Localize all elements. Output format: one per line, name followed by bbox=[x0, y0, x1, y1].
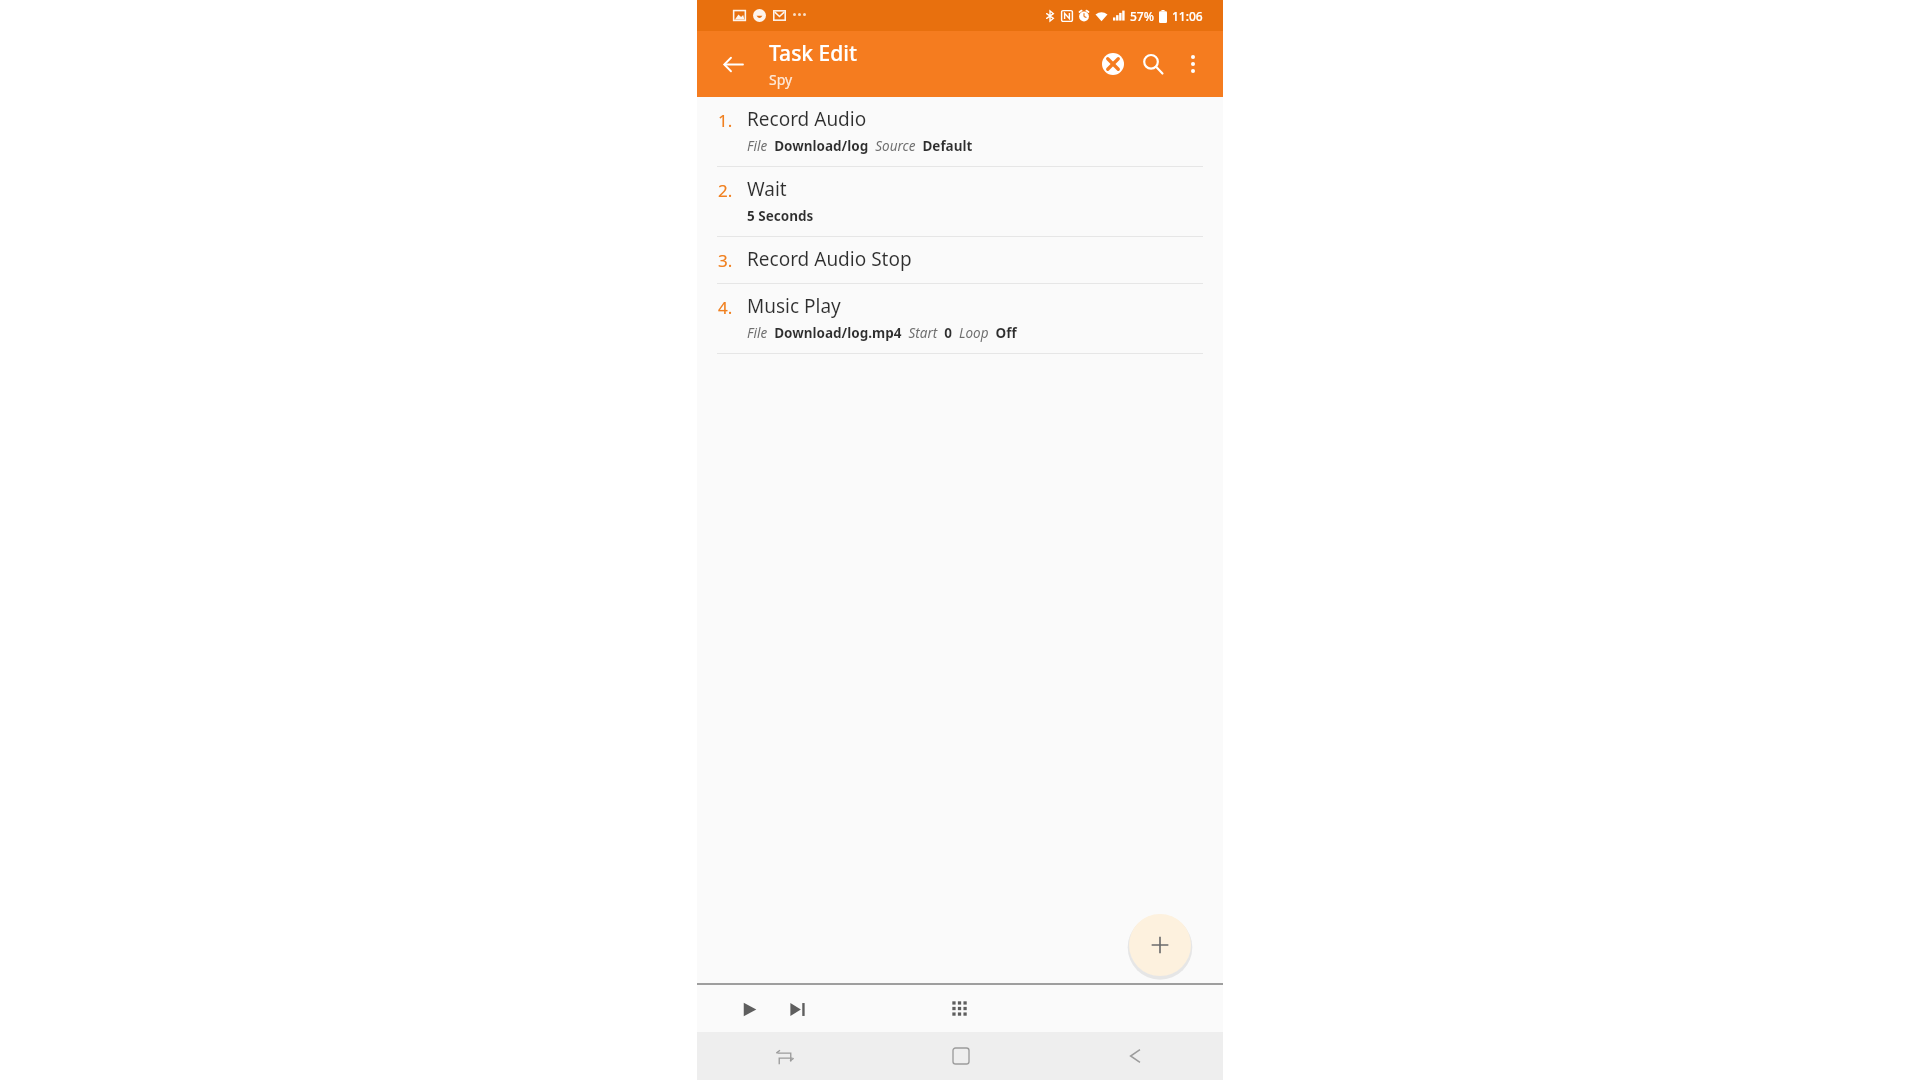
staticText: Wait bbox=[747, 176, 787, 202]
staticText: Task Edit bbox=[769, 39, 857, 68]
button[interactable]: Grid view bbox=[939, 988, 981, 1030]
staticText: Music Play bbox=[747, 293, 841, 319]
button[interactable]: More options bbox=[1173, 44, 1213, 84]
staticText: 57% bbox=[1130, 8, 1154, 24]
button[interactable]: Step forward bbox=[777, 989, 817, 1029]
button[interactable]: 4. bbox=[697, 284, 1223, 353]
staticText: 1. bbox=[718, 109, 747, 132]
button[interactable]: Play bbox=[729, 989, 769, 1029]
button[interactable]: 3. bbox=[697, 237, 1223, 283]
staticText: File Download/log.mp4 Start 0 Loop Off bbox=[747, 324, 1017, 342]
staticText: 5 Seconds bbox=[747, 207, 814, 225]
staticText: Spy bbox=[769, 70, 793, 89]
button[interactable]: Recents bbox=[763, 1034, 807, 1078]
button[interactable]: Add action bbox=[1129, 914, 1191, 976]
button[interactable]: Clear bbox=[1093, 44, 1133, 84]
button[interactable]: Home bbox=[939, 1034, 983, 1078]
staticText: 11:06 bbox=[1172, 8, 1203, 24]
staticText: Record Audio Stop bbox=[747, 246, 912, 272]
staticText: 4. bbox=[718, 296, 747, 319]
button[interactable]: 2. bbox=[697, 167, 1223, 236]
button[interactable]: Back bbox=[715, 46, 751, 82]
staticText: Record Audio bbox=[747, 106, 867, 132]
staticText: File Download/log Source Default bbox=[747, 137, 973, 155]
button[interactable]: 1. bbox=[697, 97, 1223, 166]
staticText: 3. bbox=[718, 249, 747, 272]
button[interactable]: Back bbox=[1114, 1034, 1158, 1078]
button[interactable]: Search bbox=[1133, 44, 1173, 84]
staticText: 2. bbox=[718, 179, 747, 202]
